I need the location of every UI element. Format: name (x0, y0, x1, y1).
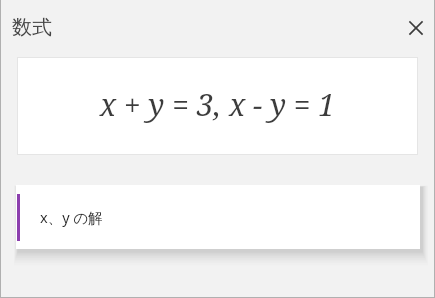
staticText: 数式 (12, 15, 52, 40)
staticText: x、y の解 (40, 207, 103, 227)
button[interactable]: x、y の解 (16, 185, 420, 249)
button[interactable]: x + y = 3, x − y = 1 (17, 57, 418, 155)
button[interactable]: 閉じる (401, 13, 431, 43)
staticText: x + y = 3, x − y = 1 (17, 84, 418, 125)
